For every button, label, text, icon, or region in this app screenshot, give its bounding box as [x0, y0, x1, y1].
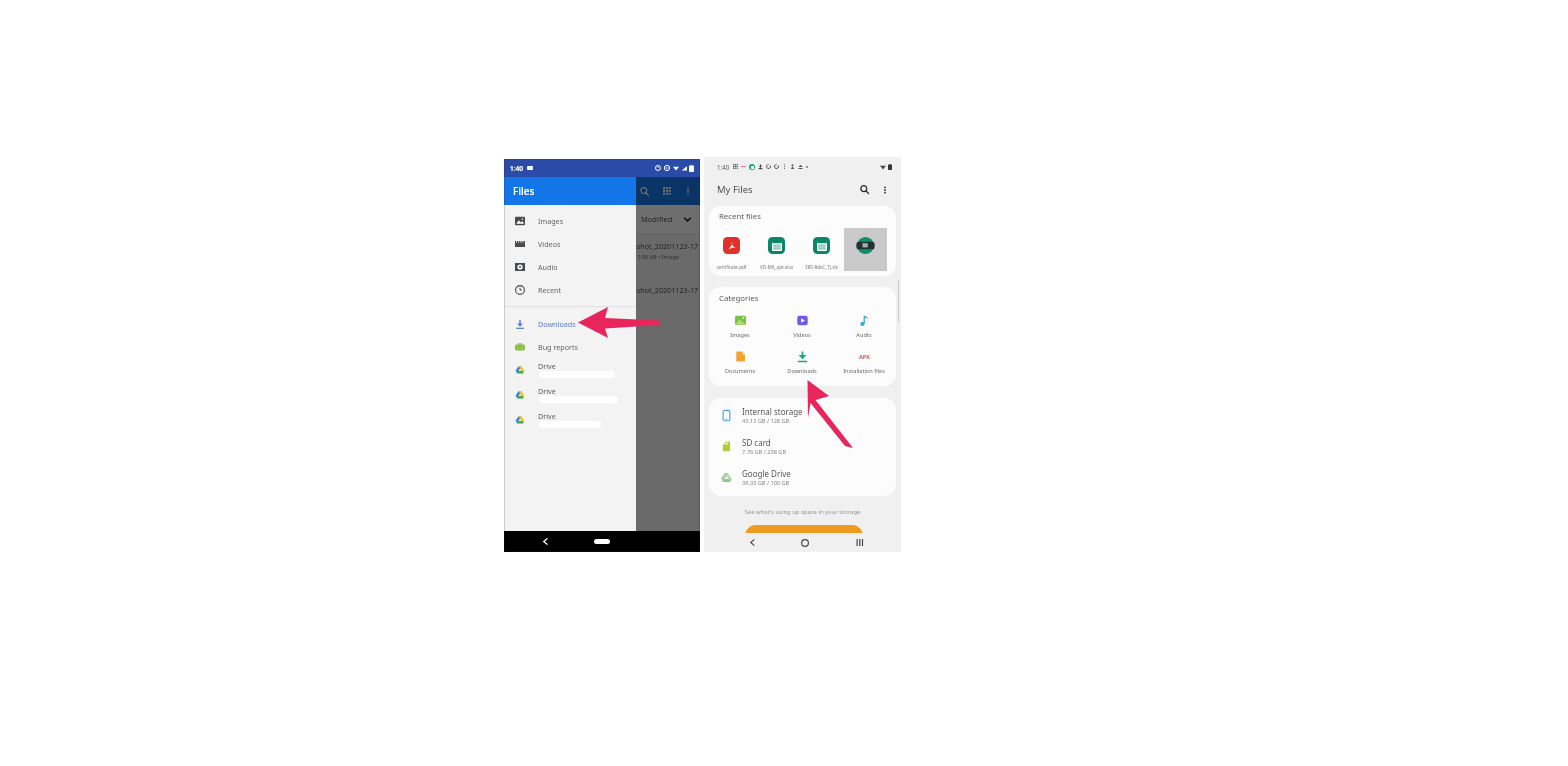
button[interactable]: 380-RdsC_Tj.xls — [799, 228, 844, 275]
button[interactable]: Recents — [849, 533, 869, 552]
button[interactable]: Documents — [709, 350, 771, 382]
button[interactable]: APK — [833, 350, 895, 382]
button[interactable]: Home — [586, 531, 618, 552]
button[interactable]: Home — [795, 533, 815, 552]
staticText: 39.33 GB / 100 GB — [742, 479, 790, 487]
staticText: Drive — [538, 411, 556, 421]
staticText: 1:40 — [717, 163, 730, 171]
staticText: Recent — [538, 285, 562, 295]
button[interactable]: Images — [504, 209, 636, 232]
button[interactable]: More options — [681, 184, 695, 198]
button[interactable] — [844, 228, 887, 271]
staticText: Nov 23 • 190 kB • Image — [614, 253, 680, 261]
button[interactable]: Audio — [833, 314, 895, 346]
staticText: Audio — [833, 331, 895, 339]
button[interactable]: Search — [636, 183, 652, 199]
button[interactable]: Images — [709, 314, 771, 346]
button[interactable]: Drive — [504, 358, 636, 383]
button[interactable]: VD-MK_apt.xlsx — [754, 228, 799, 275]
staticText: Categories — [719, 293, 759, 304]
staticText: Recent files — [719, 211, 761, 222]
staticText: SD card — [742, 437, 771, 448]
staticText: 1:40 — [510, 164, 523, 173]
button[interactable]: Back — [537, 531, 553, 552]
button[interactable]: Downloads — [504, 312, 636, 335]
button[interactable]: Back — [742, 533, 762, 552]
staticText: Drive — [538, 361, 556, 371]
staticText: Videos — [771, 331, 833, 339]
staticText: Installation files — [833, 367, 895, 375]
staticText: See what's using up space in your storag… — [704, 508, 901, 516]
button[interactable]: More options — [878, 183, 892, 197]
staticText: Audio — [538, 262, 558, 272]
staticText: Documents — [709, 367, 771, 375]
button[interactable]: Videos — [504, 232, 636, 255]
staticText: Downloads — [771, 367, 833, 375]
staticText: Downloads — [538, 319, 576, 329]
staticText: Internal storage — [742, 406, 803, 417]
staticText: Images — [538, 216, 564, 226]
button[interactable]: SD card — [709, 431, 896, 462]
staticText: Modified — [641, 214, 673, 224]
button[interactable]: Drive — [504, 408, 636, 433]
staticText: Bug reports — [538, 342, 579, 352]
staticText: 380-RdsC_Tj.xls — [799, 264, 844, 270]
button[interactable]: Recent — [504, 278, 636, 301]
staticText: APK — [859, 353, 871, 361]
button[interactable]: certificate.pdf — [709, 228, 754, 275]
button[interactable]: Google Drive — [709, 462, 896, 493]
staticText: certificate.pdf — [709, 264, 754, 270]
button[interactable]: Search — [857, 182, 872, 197]
staticText: Screenshot_20201123-174005 (1).png — [614, 241, 700, 251]
staticText: Google Drive — [742, 468, 791, 479]
button[interactable]: Bug reports — [504, 335, 636, 358]
button[interactable]: Audio — [504, 255, 636, 278]
staticText: Analyze storage — [778, 531, 831, 541]
button[interactable]: Grid view — [659, 183, 675, 199]
button[interactable]: Analyze storage — [745, 525, 863, 547]
staticText: Drive — [538, 386, 556, 396]
staticText: Files — [513, 184, 535, 198]
button[interactable]: Downloads — [771, 350, 833, 382]
staticText: 7.76 GB / 238 GB — [742, 448, 787, 456]
staticText: Videos — [538, 239, 561, 249]
staticText: 43.13 GB / 128 GB — [742, 417, 790, 425]
staticText: 1:40 — [510, 164, 523, 173]
staticText: VD-MK_apt.xlsx — [754, 264, 799, 270]
button[interactable]: Internal storage — [709, 400, 896, 431]
staticText: Images — [709, 331, 771, 339]
staticText: My Files — [717, 183, 753, 196]
button[interactable]: Videos — [771, 314, 833, 346]
button[interactable]: Drive — [504, 383, 636, 408]
staticText: Screenshot_20201123-173916.png — [614, 285, 700, 295]
